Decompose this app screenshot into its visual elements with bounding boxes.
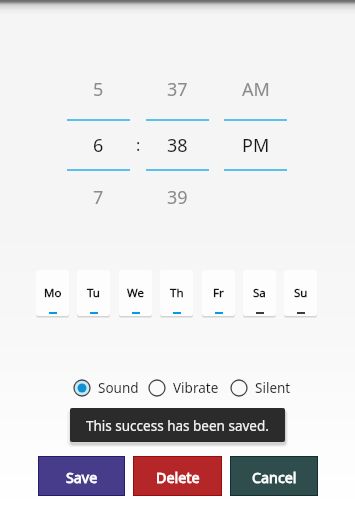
staticText: Th bbox=[170, 285, 184, 301]
button[interactable]: Cancel bbox=[231, 457, 317, 495]
staticText: Vibrate bbox=[173, 379, 219, 397]
staticText: This success has been saved. bbox=[86, 417, 269, 435]
button[interactable]: Vibrate bbox=[148, 377, 219, 398]
staticText: We bbox=[127, 285, 144, 301]
button[interactable]: Sound bbox=[73, 377, 139, 398]
button[interactable]: Save bbox=[39, 457, 124, 495]
button[interactable]: PM bbox=[224, 124, 287, 166]
button[interactable]: 38 bbox=[146, 124, 209, 166]
button[interactable]: 7 bbox=[67, 176, 130, 218]
staticText: 7 bbox=[93, 185, 104, 210]
button[interactable]: Fr bbox=[202, 270, 235, 316]
staticText: AM bbox=[242, 77, 270, 102]
staticText: 37 bbox=[167, 77, 188, 102]
staticText: : bbox=[136, 134, 141, 156]
staticText: 6 bbox=[93, 133, 104, 158]
button[interactable]: Su bbox=[284, 270, 317, 316]
button[interactable]: Tu bbox=[77, 270, 110, 316]
staticText: Su bbox=[294, 285, 308, 301]
staticText: Sa bbox=[253, 285, 266, 301]
staticText: Sound bbox=[98, 379, 139, 397]
staticText: Delete bbox=[156, 468, 200, 487]
staticText: Save bbox=[66, 468, 98, 487]
staticText: 39 bbox=[167, 185, 188, 210]
button[interactable]: AM bbox=[224, 68, 287, 110]
button[interactable]: This success has been saved. bbox=[70, 408, 285, 442]
staticText: Silent bbox=[255, 379, 291, 397]
staticText: Mo bbox=[44, 285, 62, 301]
staticText: PM bbox=[242, 133, 270, 158]
button[interactable]: We bbox=[119, 270, 152, 316]
staticText: Cancel bbox=[252, 468, 297, 487]
button[interactable]: Sa bbox=[243, 270, 276, 316]
button[interactable]: Mo bbox=[36, 270, 69, 316]
button[interactable]: 6 bbox=[67, 124, 130, 166]
staticText: 5 bbox=[93, 77, 104, 102]
button[interactable]: Th bbox=[160, 270, 193, 316]
button[interactable]: 39 bbox=[146, 176, 209, 218]
button[interactable]: Delete bbox=[134, 457, 221, 495]
button[interactable]: 5 bbox=[67, 68, 130, 110]
button[interactable]: Silent bbox=[230, 377, 291, 398]
staticText: Fr bbox=[213, 285, 224, 301]
staticText: Tu bbox=[87, 285, 100, 301]
staticText: 38 bbox=[167, 133, 188, 158]
button[interactable]: 37 bbox=[146, 68, 209, 110]
